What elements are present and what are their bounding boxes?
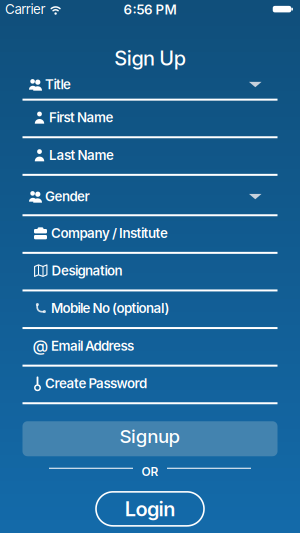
button[interactable]: Login — [96, 492, 204, 526]
button[interactable]: @ — [0, 329, 300, 367]
staticText: Title — [45, 76, 71, 92]
staticText: Carrier — [5, 1, 46, 17]
staticText: @ — [32, 336, 48, 355]
button[interactable]: First Name — [0, 101, 300, 138]
button[interactable]: Signup — [22, 421, 277, 456]
staticText: Company / Institute — [51, 225, 168, 241]
staticText: Create Password — [45, 376, 147, 391]
button[interactable]: Mobile No (optional) — [0, 291, 300, 329]
staticText: First Name — [49, 110, 113, 125]
staticText: Mobile No (optional) — [51, 300, 169, 316]
button[interactable]: Company / Institute — [0, 216, 300, 254]
staticText: Signup — [119, 425, 180, 447]
staticText: Designation — [51, 263, 122, 278]
staticText: Last Name — [49, 147, 114, 163]
button[interactable]: Last Name — [0, 138, 300, 176]
staticText: Sign Up — [114, 46, 186, 70]
staticText: Login — [125, 497, 175, 521]
staticText: 6:56 PM — [124, 2, 176, 17]
button[interactable]: Designation — [0, 254, 300, 291]
button[interactable]: Create Password — [0, 367, 300, 404]
button[interactable]: Title — [0, 70, 300, 101]
staticText: Gender — [45, 189, 89, 204]
staticText: OR — [141, 465, 158, 479]
staticText: Email Address — [51, 338, 134, 354]
button[interactable]: Gender — [0, 179, 300, 216]
